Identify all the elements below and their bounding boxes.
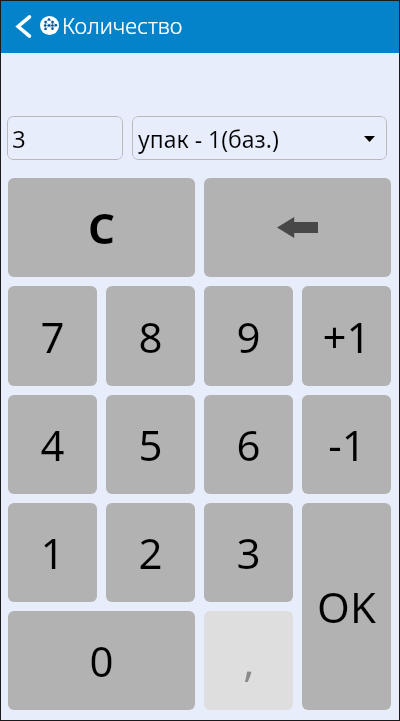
- button[interactable]: 1: [8, 503, 97, 602]
- staticText: +1: [322, 308, 371, 365]
- button[interactable]: ,: [204, 611, 293, 710]
- button[interactable]: 8: [106, 286, 195, 386]
- button[interactable]: 3: [7, 116, 123, 160]
- staticText: Количество: [62, 10, 183, 40]
- staticText: 3: [236, 524, 261, 581]
- button[interactable]: Back: [5, 5, 41, 49]
- button[interactable]: упак - 1(баз.): [132, 116, 387, 160]
- button[interactable]: 4: [8, 395, 97, 494]
- staticText: C: [88, 199, 115, 256]
- staticText: 4: [40, 416, 65, 473]
- staticText: 6: [236, 416, 261, 473]
- staticText: 9: [236, 308, 261, 365]
- staticText: упак - 1(баз.): [138, 123, 279, 154]
- staticText: 5: [138, 416, 163, 473]
- button[interactable]: 0: [8, 611, 195, 710]
- staticText: 2: [138, 524, 163, 581]
- staticText: 8: [138, 308, 163, 365]
- button[interactable]: C: [8, 178, 195, 277]
- staticText: -1: [328, 416, 366, 473]
- button[interactable]: 5: [106, 395, 195, 494]
- button[interactable]: 2: [106, 503, 195, 602]
- button[interactable]: 7: [8, 286, 97, 386]
- button[interactable]: [204, 178, 391, 277]
- staticText: 0: [89, 632, 114, 689]
- button[interactable]: -1: [302, 395, 391, 494]
- button[interactable]: 3: [204, 503, 293, 602]
- button[interactable]: 6: [204, 395, 293, 494]
- button[interactable]: +1: [302, 286, 391, 386]
- staticText: OK: [317, 578, 376, 635]
- staticText: ,: [243, 632, 255, 689]
- staticText: 7: [40, 308, 65, 365]
- button[interactable]: OK: [302, 503, 391, 710]
- button[interactable]: 9: [204, 286, 293, 386]
- staticText: 1: [40, 524, 65, 581]
- staticText: 3: [12, 122, 26, 155]
